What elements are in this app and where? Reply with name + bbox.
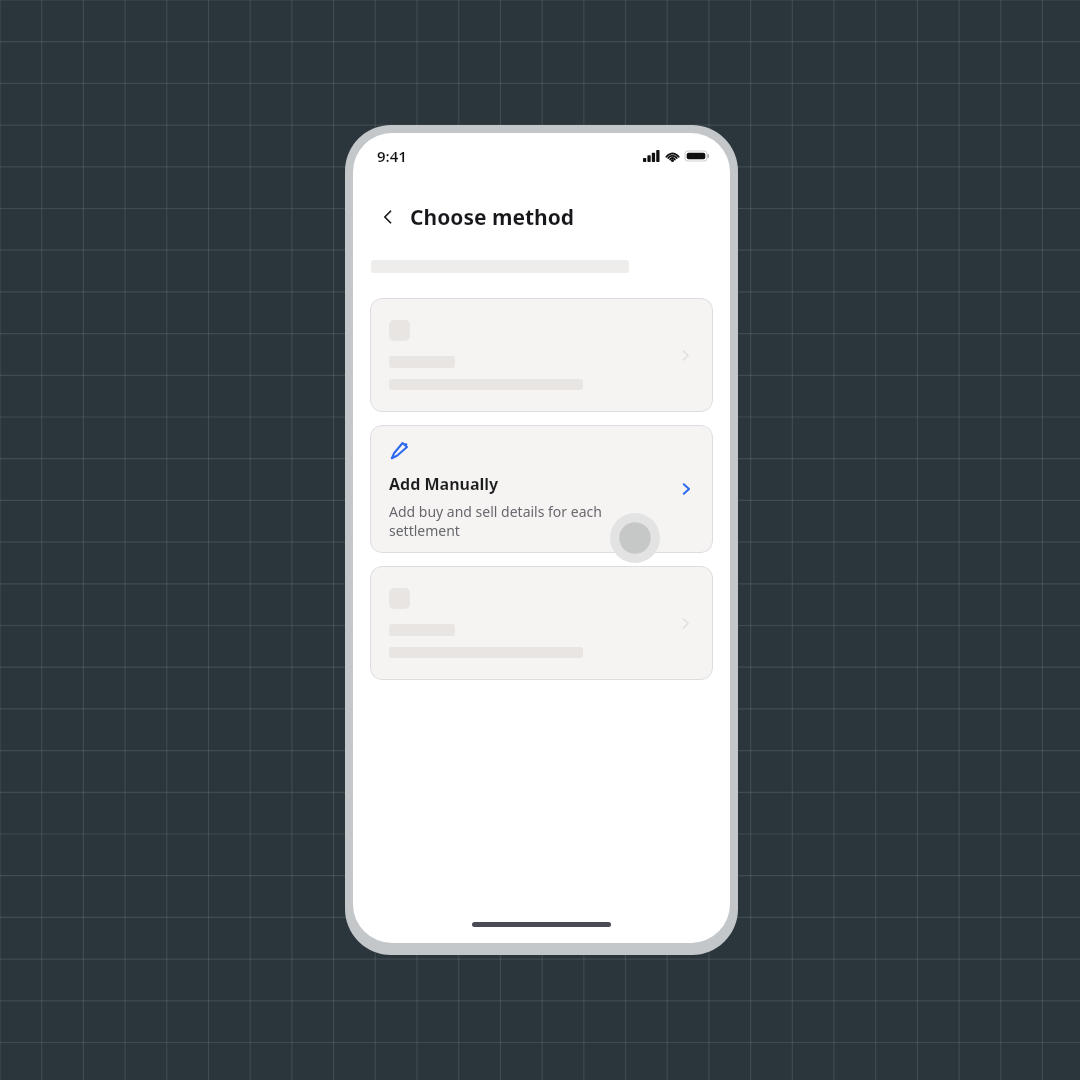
button[interactable] <box>370 566 713 680</box>
staticText: Add buy and sell details for each settle… <box>389 502 659 540</box>
button[interactable]: Back <box>371 200 405 234</box>
staticText: 9:41 <box>377 146 407 166</box>
button[interactable]: Edit <box>370 425 713 553</box>
other: Edit <box>389 441 409 461</box>
staticText: Add Manually <box>389 473 499 495</box>
staticText: Choose method <box>410 203 575 232</box>
button[interactable] <box>370 298 713 412</box>
